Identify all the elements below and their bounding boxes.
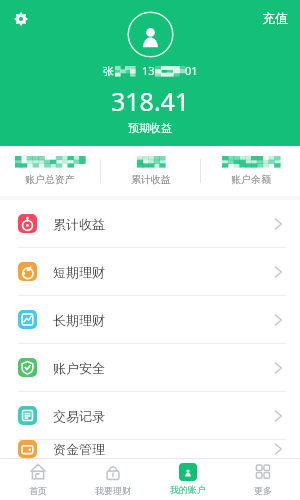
button[interactable]: 充值	[256, 6, 294, 30]
staticText: 资金管理	[53, 441, 105, 457]
button[interactable]: Avatar	[127, 11, 174, 58]
button[interactable]: 资金管理	[0, 440, 300, 458]
staticText: 我的账户	[170, 484, 206, 495]
button[interactable]: 首页	[0, 458, 75, 500]
button[interactable]: 账户安全	[0, 344, 300, 391]
staticText: 充值	[262, 10, 288, 26]
staticText: 长期理财	[53, 312, 105, 328]
staticText: 预期收益	[128, 121, 172, 135]
staticText: 累计收益	[131, 173, 171, 186]
staticText: 短期理财	[53, 264, 105, 280]
staticText: 首页	[29, 485, 47, 496]
staticText: 更多	[254, 485, 272, 496]
button[interactable]: 账户余额	[201, 146, 300, 196]
staticText: 01	[185, 63, 198, 78]
staticText: 累计收益	[53, 216, 105, 232]
staticText: 张	[103, 64, 114, 78]
staticText: 13	[142, 63, 155, 78]
staticText: 账户总资产	[25, 173, 75, 186]
staticText: 318.41	[111, 84, 190, 118]
button[interactable]: 更多	[225, 458, 300, 500]
button[interactable]: 累计收益	[0, 200, 300, 247]
staticText: 交易记录	[53, 408, 105, 424]
staticText: 账户余额	[231, 173, 271, 186]
button[interactable]: 我的账户	[150, 458, 225, 500]
button[interactable]: 累计收益	[101, 146, 200, 196]
button[interactable]: 短期理财	[0, 248, 300, 295]
staticText: 账户安全	[53, 360, 105, 376]
staticText: 我要理财	[95, 485, 131, 496]
button[interactable]: 交易记录	[0, 392, 300, 439]
button[interactable]: 账户总资产	[0, 146, 100, 196]
button[interactable]: 长期理财	[0, 296, 300, 343]
button[interactable]: 我要理财	[75, 458, 150, 500]
button[interactable]: Settings	[8, 6, 34, 32]
